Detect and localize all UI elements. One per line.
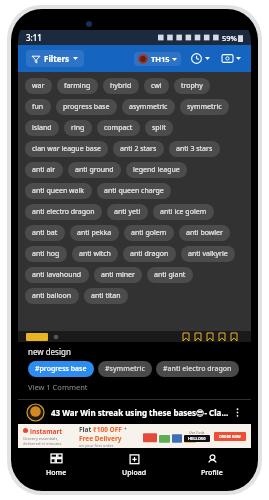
button[interactable]: anti titan (84, 288, 128, 304)
button[interactable]: #symmetric (98, 361, 152, 377)
staticText: anti hog (32, 249, 60, 259)
staticText: Home (46, 468, 67, 478)
staticText: anti electro dragon (32, 207, 95, 217)
button[interactable]: anti air (25, 162, 63, 178)
staticText: ₹100 OFF (93, 425, 122, 434)
staticText: anti miner (101, 270, 135, 280)
button[interactable]: 43 War Win streak using these bases😎- Cl… (18, 400, 251, 424)
staticText: anti ice golem (160, 207, 207, 217)
button[interactable]: war (25, 78, 52, 94)
button[interactable]: anti bat (25, 225, 65, 241)
button[interactable]: anti golem (124, 225, 174, 241)
button[interactable]: progress base (56, 99, 117, 115)
button[interactable]: trophy (174, 78, 210, 94)
button[interactable]: anti queen walk (25, 183, 92, 199)
staticText: TH15 (151, 54, 170, 64)
staticText: anti queen walk (32, 186, 85, 196)
staticText: instamart (30, 427, 63, 436)
staticText: anti ground (75, 165, 114, 175)
staticText: anti bat (32, 228, 58, 238)
staticText: asymmetric (129, 102, 168, 112)
button[interactable]: Profile (173, 448, 251, 484)
button[interactable]: anti valkyrie (181, 246, 235, 262)
button[interactable]: split (145, 120, 173, 136)
button[interactable]: clan war league base (25, 141, 108, 157)
staticText: + (122, 425, 127, 433)
staticText: delivered in minutes. (23, 441, 63, 446)
staticText: trophy (181, 81, 203, 91)
staticText: HELLO50 (188, 436, 206, 441)
button[interactable]: compact (97, 120, 140, 136)
staticText: anti queen charge (104, 186, 164, 196)
button[interactable]: farming (57, 78, 98, 94)
button[interactable]: Recent (189, 51, 212, 66)
button[interactable]: anti dragon (123, 246, 176, 262)
button[interactable]: anti ice golem (153, 204, 214, 220)
staticText: Upload (122, 468, 147, 478)
staticText: ring (71, 123, 85, 133)
button[interactable]: anti 2 stars (113, 141, 164, 157)
staticText: Grocery essentials, (23, 436, 59, 441)
button[interactable]: anti miner (94, 267, 142, 283)
button[interactable]: fun (25, 99, 51, 115)
staticText: Profile (201, 468, 223, 478)
staticText: anti titan (91, 291, 121, 301)
staticText: anti giant (154, 270, 186, 280)
button[interactable]: anti balloon (25, 288, 79, 304)
button[interactable]: #progress base (28, 361, 94, 377)
staticText: anti balloon (32, 291, 72, 301)
staticText: split (152, 123, 166, 133)
staticText: farming (64, 81, 91, 91)
staticText: anti 3 stars (176, 144, 213, 154)
staticText: Filters (44, 53, 70, 64)
button[interactable]: anti pekka (70, 225, 119, 241)
button[interactable]: anti bowler (179, 225, 230, 241)
button[interactable]: anti queen charge (97, 183, 171, 199)
button[interactable]: asymmetric (122, 99, 175, 115)
staticText: new design (28, 346, 71, 357)
button[interactable]: legend league (126, 162, 187, 178)
staticText: anti pekka (77, 228, 112, 238)
button[interactable]: cwl (144, 78, 169, 94)
button[interactable]: anti witch (72, 246, 118, 262)
button[interactable]: anti 3 stars (169, 141, 220, 157)
button[interactable]: anti giant (147, 267, 193, 283)
button[interactable]: hybrid (103, 78, 139, 94)
staticText: anti dragon (130, 249, 169, 259)
staticText: anti golem (131, 228, 167, 238)
button[interactable]: anti electro dragon (25, 204, 102, 220)
button[interactable]: anti yeti (107, 204, 148, 220)
staticText: ORDER NOW (219, 434, 241, 439)
staticText: fun (32, 102, 44, 112)
button[interactable]: More options (233, 407, 242, 418)
staticText: symmetric (187, 102, 222, 112)
button[interactable]: island (25, 120, 59, 136)
button[interactable]: anti lavahound (25, 267, 89, 283)
button[interactable]: Filters (26, 50, 84, 67)
staticText: Free Delivery (79, 434, 122, 443)
button[interactable]: anti ground (68, 162, 121, 178)
button[interactable]: Home (18, 448, 95, 484)
button[interactable]: #anti electro dragon (156, 361, 239, 377)
staticText: cwl (151, 81, 162, 91)
staticText: clan war league base (32, 144, 101, 154)
button[interactable]: Upload (95, 448, 173, 484)
staticText: anti lavahound (32, 270, 82, 280)
button[interactable]: anti hog (25, 246, 67, 262)
staticText: anti 2 stars (120, 144, 157, 154)
button[interactable]: ring (64, 120, 92, 136)
button[interactable]: symmetric (180, 99, 229, 115)
staticText: anti valkyrie (188, 249, 228, 259)
staticText: 3:11 (26, 32, 42, 43)
staticText: war (32, 81, 45, 91)
staticText: anti air (32, 165, 56, 175)
staticText: Use Code (189, 430, 205, 435)
button[interactable]: TH15 (134, 52, 181, 66)
staticText: island (32, 123, 52, 133)
button[interactable]: Layout (220, 51, 243, 66)
button[interactable]: View 1 Comment (28, 382, 88, 392)
button[interactable]: instamart (18, 424, 251, 448)
staticText: #progress base (35, 364, 87, 374)
staticText: Flat (79, 425, 93, 434)
staticText: 59% (222, 33, 237, 43)
